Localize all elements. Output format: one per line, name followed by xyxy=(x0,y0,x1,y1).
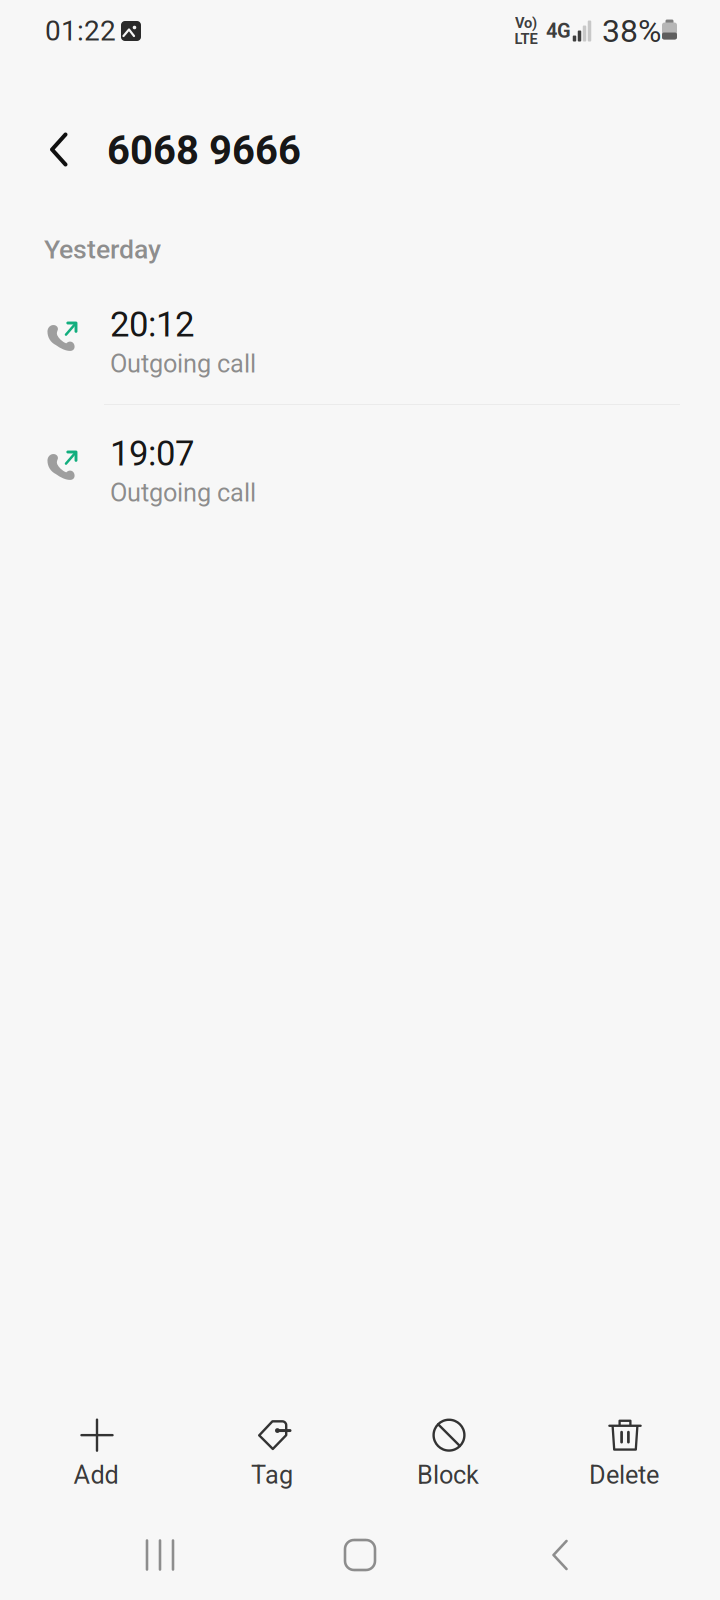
button[interactable]: Delete xyxy=(536,1401,712,1499)
staticText: 4G xyxy=(546,19,571,43)
button[interactable]: Back xyxy=(20,101,98,197)
button[interactable]: Back xyxy=(480,1510,640,1600)
staticText: Outgoing call xyxy=(110,349,256,379)
staticText: 01:22 xyxy=(45,15,116,47)
staticText: Outgoing call xyxy=(110,478,256,508)
button[interactable]: Tag xyxy=(184,1401,360,1499)
staticText: 6068 9666 xyxy=(107,127,301,174)
button[interactable]: Block xyxy=(360,1401,536,1499)
button[interactable]: Add xyxy=(8,1401,184,1499)
staticText: 38% xyxy=(602,12,661,50)
button[interactable]: Recents xyxy=(80,1510,240,1600)
button[interactable]: Home xyxy=(280,1510,440,1600)
staticText: Delete xyxy=(589,1460,659,1490)
staticText: LTE xyxy=(514,30,537,48)
staticText: 19:07 xyxy=(110,433,194,474)
staticText: Add xyxy=(73,1460,118,1490)
staticText: Vo) xyxy=(515,14,537,31)
button[interactable]: 19:07 xyxy=(0,407,720,535)
button[interactable]: 20:12 xyxy=(0,278,720,406)
staticText: Yesterday xyxy=(44,234,161,265)
staticText: 20:12 xyxy=(110,304,194,345)
staticText: Tag xyxy=(251,1460,293,1490)
staticText: Block xyxy=(417,1460,479,1490)
